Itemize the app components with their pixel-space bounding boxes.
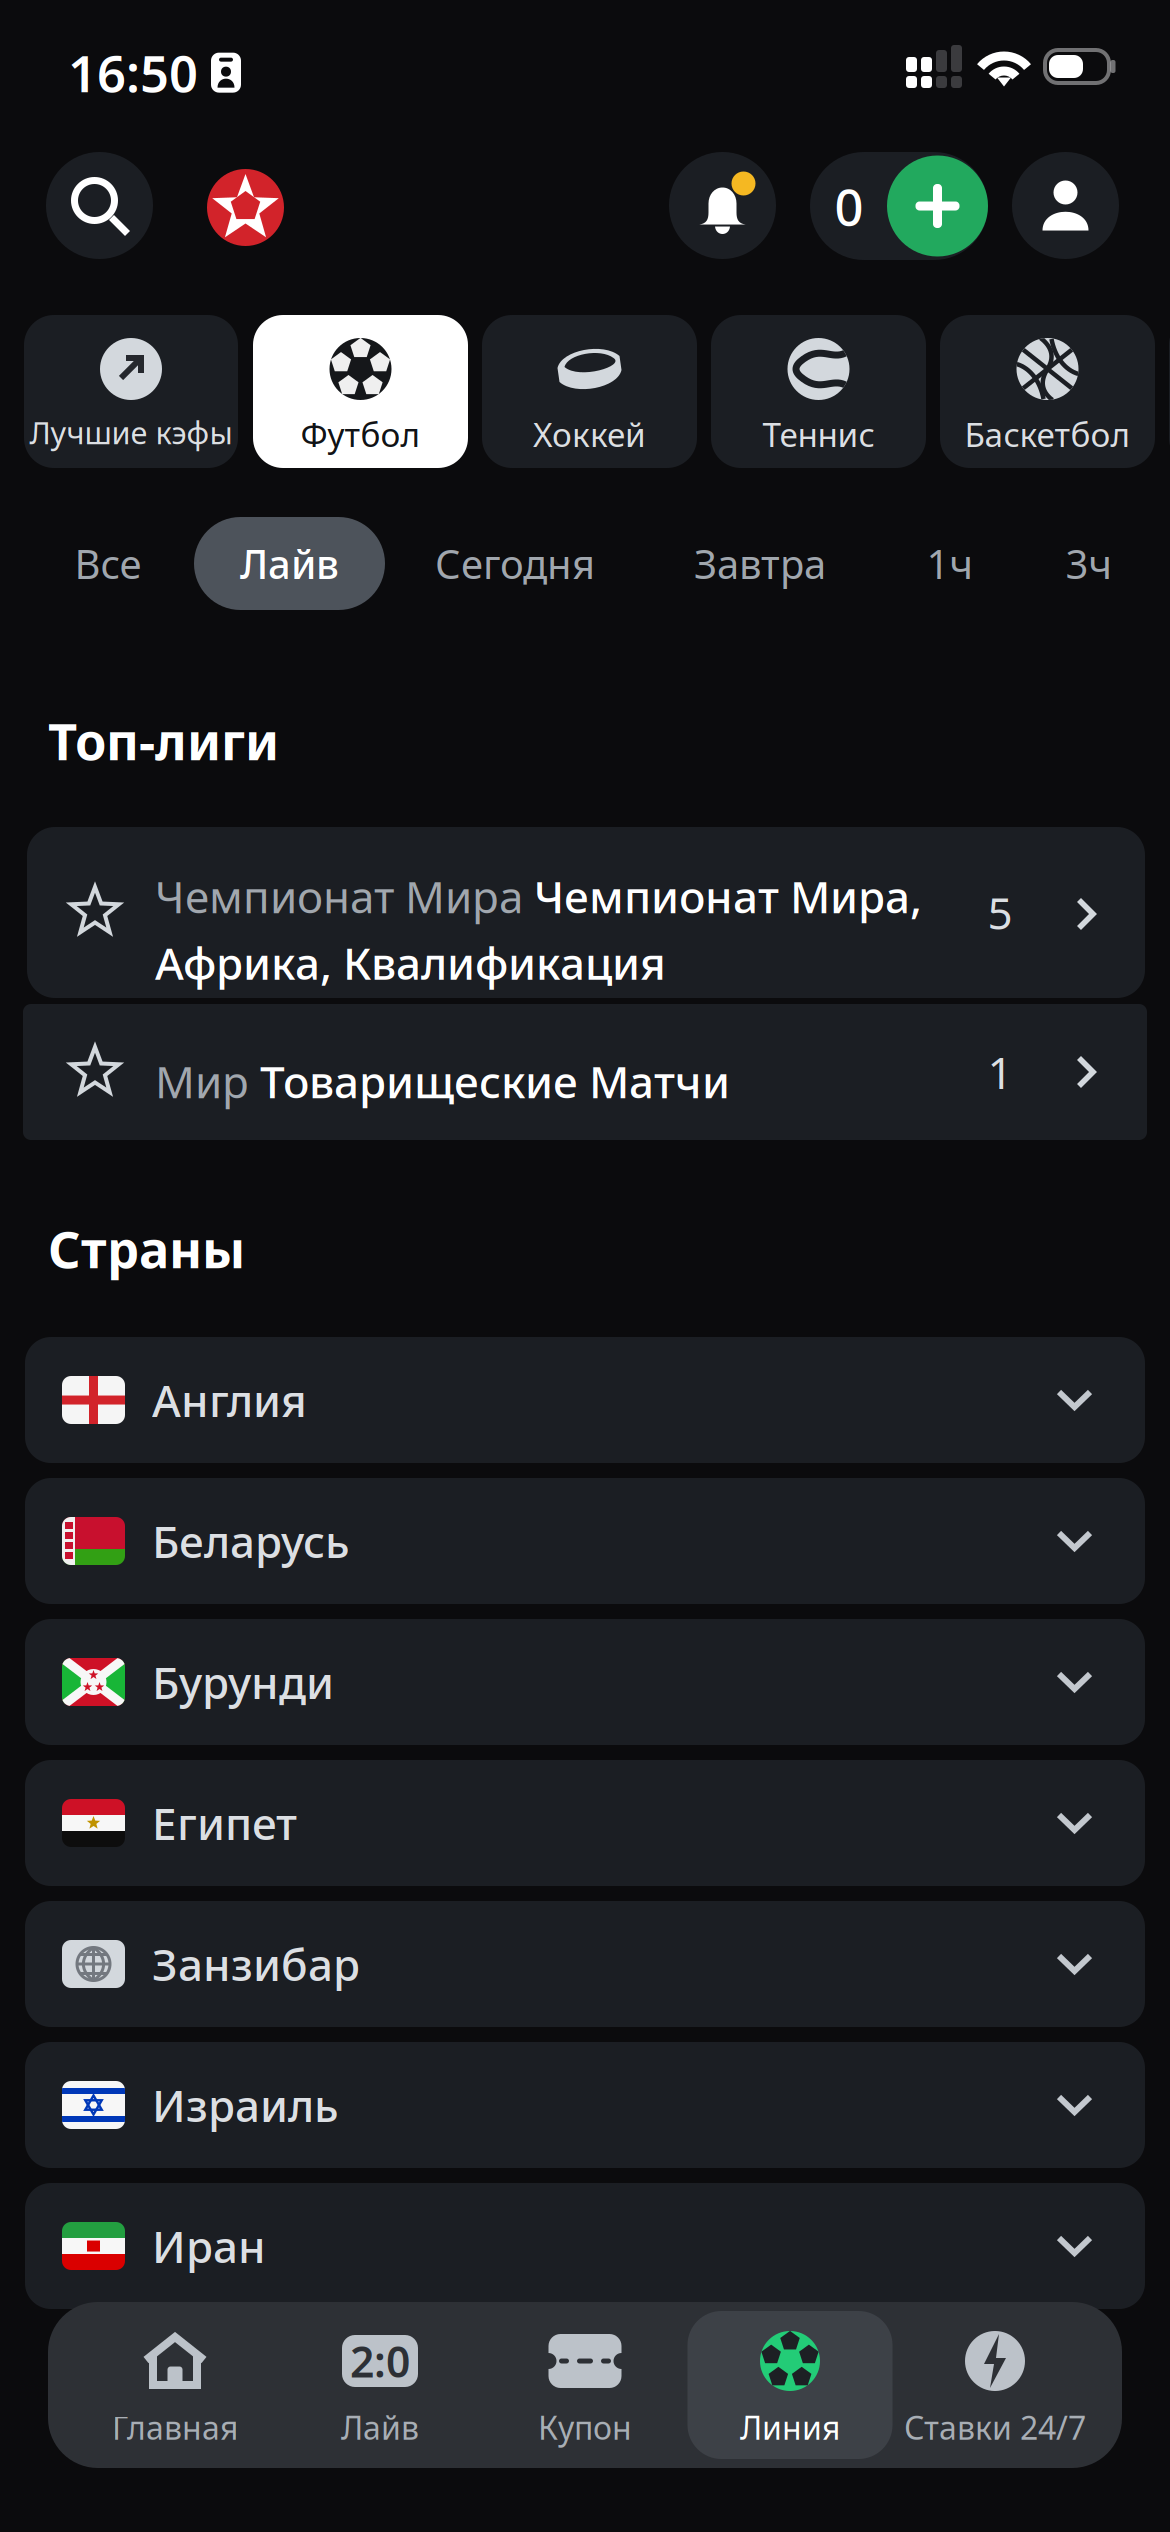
staticText: Лучшие кэфы: [29, 412, 232, 453]
staticText: Завтра: [694, 537, 826, 590]
staticText: Иран: [152, 2217, 266, 2275]
staticText: 1ч: [926, 537, 973, 590]
button[interactable]: 0: [810, 152, 988, 260]
button[interactable]: Сегодня: [415, 517, 615, 610]
staticText: Лайв: [240, 537, 339, 590]
staticText: Мир: [155, 1052, 260, 1110]
button[interactable]: Волейбол: [1169, 315, 1170, 468]
staticText: Англия: [152, 1371, 307, 1429]
staticText: Чемпионат Мира,: [534, 867, 922, 925]
staticText: Бурунди: [152, 1653, 334, 1711]
button[interactable]: Лучшие кэфы: [24, 315, 238, 468]
staticText: Африка, Квалификация: [155, 933, 666, 992]
button[interactable]: Мир: [23, 1004, 1147, 1140]
button[interactable]: Беларусь: [25, 1478, 1145, 1604]
staticText: Хоккей: [533, 412, 646, 456]
button[interactable]: Profile: [1012, 152, 1119, 259]
button[interactable]: Египет: [25, 1760, 1145, 1886]
button[interactable]: 2:0: [277, 2311, 482, 2459]
button[interactable]: Завтра: [670, 517, 850, 610]
button[interactable]: Иран: [25, 2183, 1145, 2309]
button[interactable]: Израиль: [25, 2042, 1145, 2168]
staticText: Теннис: [762, 412, 874, 456]
button[interactable]: Купон: [482, 2311, 687, 2459]
staticText: Товарищеские Матчи: [260, 1052, 730, 1110]
button[interactable]: Теннис: [711, 315, 926, 468]
staticText: Главная: [112, 2406, 238, 2448]
staticText: 5: [987, 883, 1012, 942]
staticText: Топ-лиги: [48, 707, 279, 774]
staticText: Чемпионат Мира: [155, 867, 534, 925]
staticText: 3ч: [1065, 537, 1112, 590]
button[interactable]: Чемпионат Мира: [27, 827, 1145, 998]
button[interactable]: Линия: [687, 2311, 892, 2459]
staticText: 1: [987, 1043, 1012, 1101]
staticText: Страны: [48, 1215, 245, 1282]
button[interactable]: Бурунди: [25, 1619, 1145, 1745]
staticText: 16:50: [68, 39, 198, 106]
staticText: Лайв: [341, 2406, 419, 2448]
staticText: Беларусь: [152, 1512, 350, 1570]
staticText: Израиль: [152, 2076, 339, 2134]
button[interactable]: Занзибар: [25, 1901, 1145, 2027]
button[interactable]: Лайв: [194, 517, 385, 610]
staticText: 0: [834, 172, 863, 240]
button[interactable]: 3ч: [1044, 517, 1134, 610]
staticText: Футбол: [300, 412, 420, 456]
staticText: Занзибар: [152, 1935, 360, 1993]
button[interactable]: Главная: [72, 2311, 277, 2459]
button[interactable]: Home: [207, 169, 284, 246]
button[interactable]: Ставки 24/7: [892, 2311, 1097, 2459]
button[interactable]: Баскетбол: [940, 315, 1155, 468]
button[interactable]: 1ч: [905, 517, 995, 610]
staticText: Ставки 24/7: [904, 2406, 1086, 2448]
staticText: Египет: [152, 1794, 297, 1852]
button[interactable]: Хоккей: [482, 315, 697, 468]
button[interactable]: Notifications: [669, 152, 776, 259]
button[interactable]: Search: [46, 152, 153, 259]
staticText: Сегодня: [435, 537, 595, 590]
staticText: 2:0: [350, 2333, 410, 2389]
staticText: Линия: [740, 2406, 840, 2448]
staticText: Баскетбол: [964, 412, 1130, 456]
button[interactable]: Все: [33, 517, 183, 610]
staticText: Купон: [538, 2406, 632, 2448]
button[interactable]: Футбол: [253, 315, 468, 468]
button[interactable]: Англия: [25, 1337, 1145, 1463]
staticText: Все: [74, 537, 141, 590]
